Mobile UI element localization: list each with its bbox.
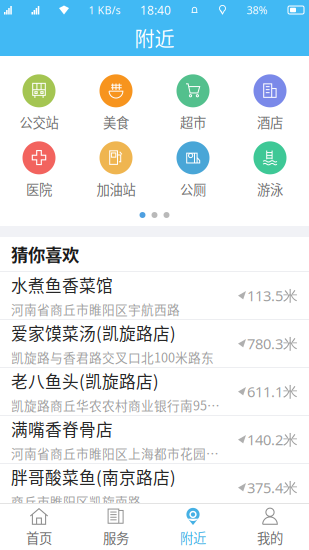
button[interactable]: 加油站 — [77, 146, 154, 194]
staticText: 首页 — [26, 528, 52, 547]
button[interactable]: 公交站 — [0, 79, 77, 127]
staticText: 河南省商丘市睢阳区宇航西路 — [11, 300, 180, 318]
button[interactable]: 美食 — [77, 79, 154, 127]
button[interactable]: 爱家馍菜汤(凯旋路店) — [0, 320, 309, 368]
staticText: 我的 — [257, 528, 283, 547]
staticText: 18:40 — [140, 2, 171, 18]
staticText: 河南省商丘市睢阳区上海都市花园金街… — [11, 444, 228, 462]
button[interactable]: 首页 — [0, 504, 77, 550]
staticText: 猜你喜欢 — [11, 241, 79, 267]
staticText: 780.3米 — [247, 334, 298, 353]
staticText: 附近 — [180, 528, 206, 547]
button[interactable]: 游泳 — [231, 146, 308, 194]
button[interactable]: 附近 — [154, 504, 231, 550]
staticText: 游泳 — [257, 179, 283, 199]
staticText: 公交站 — [19, 112, 58, 132]
staticText: 凯旋路商丘华农农村商业银行南95米路… — [11, 396, 228, 414]
staticText: 113.5米 — [247, 286, 298, 305]
staticText: 加油站 — [96, 179, 135, 199]
staticText: 胖哥酸菜鱼(南京路店) — [11, 465, 176, 489]
button[interactable]: 服务 — [77, 504, 154, 550]
staticText: 商丘市睢阳区凯旋南路 — [11, 492, 141, 510]
staticText: 酒店 — [257, 112, 283, 132]
staticText: 375.4米 — [247, 478, 298, 497]
staticText: 水煮鱼香菜馆 — [11, 273, 113, 297]
button[interactable]: 超市 — [154, 79, 231, 127]
staticText: 凯旋路与香君路交叉口北100米路东 — [11, 348, 214, 366]
button[interactable]: 公厕 — [154, 146, 231, 194]
staticText: 38% — [246, 3, 267, 17]
staticText: 140.2米 — [247, 430, 298, 449]
staticText: 服务 — [103, 528, 129, 547]
button[interactable]: 胖哥酸菜鱼(南京路店) — [0, 464, 309, 512]
staticText: 爱家馍菜汤(凯旋路店) — [11, 321, 176, 345]
staticText: 美食 — [103, 112, 129, 132]
button[interactable]: 我的 — [231, 504, 308, 550]
staticText: 611.1米 — [247, 382, 298, 401]
button[interactable]: 酒店 — [231, 79, 308, 127]
button[interactable]: 水煮鱼香菜馆 — [0, 272, 309, 320]
staticText: 超市 — [180, 112, 206, 132]
staticText: 1 KB/s — [88, 3, 120, 17]
staticText: 老八鱼头(凯旋路店) — [11, 369, 159, 393]
button[interactable]: 满嘴香脊骨店 — [0, 416, 309, 464]
staticText: 满嘴香脊骨店 — [11, 417, 113, 441]
staticText: 附近 — [134, 23, 174, 52]
button[interactable]: 医院 — [0, 146, 77, 194]
staticText: 公厕 — [180, 179, 206, 199]
staticText: 医院 — [26, 179, 52, 199]
button[interactable]: 老八鱼头(凯旋路店) — [0, 368, 309, 416]
